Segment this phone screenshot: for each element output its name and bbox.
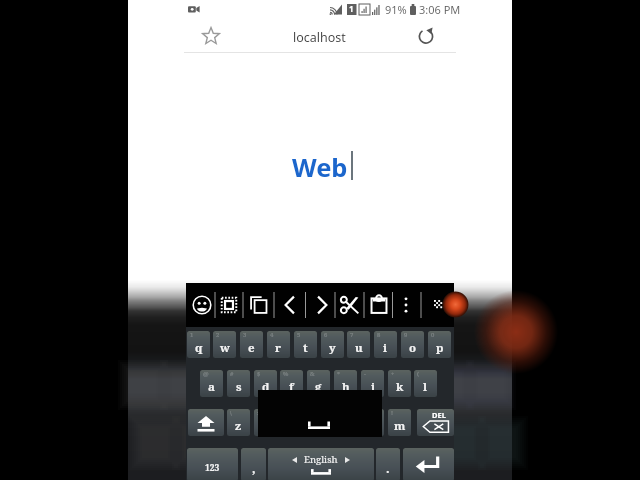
staticText: f	[289, 379, 294, 395]
staticText: &	[310, 370, 315, 378]
staticText: 6	[324, 331, 328, 339]
staticText: t	[303, 340, 308, 356]
button[interactable]: :	[254, 409, 277, 436]
staticText: 7	[350, 331, 354, 339]
button[interactable]: Bookmark	[201, 26, 221, 46]
staticText: w	[220, 340, 230, 356]
staticText: DEL	[432, 410, 446, 420]
button[interactable]: 123	[187, 448, 238, 480]
staticText: v	[315, 418, 322, 434]
button[interactable]: 6	[321, 331, 344, 358]
button[interactable]: Move left	[279, 294, 301, 316]
button[interactable]: &	[307, 370, 330, 397]
staticText: z	[235, 418, 242, 434]
button[interactable]: (	[414, 370, 437, 397]
button[interactable]: -	[361, 370, 384, 397]
button[interactable]: \	[227, 409, 250, 436]
staticText: q	[195, 340, 203, 356]
staticText: m	[394, 418, 406, 434]
staticText: 4	[270, 331, 274, 339]
button[interactable]: Paste	[368, 294, 390, 316]
button[interactable]: ?	[361, 409, 384, 436]
staticText: 1	[349, 3, 354, 14]
staticText: !	[391, 409, 393, 417]
staticText: (	[417, 370, 420, 378]
staticText: 91%	[385, 2, 407, 17]
button[interactable]: 2	[213, 331, 236, 358]
staticText: -	[364, 370, 366, 378]
button[interactable]: 3	[240, 331, 263, 358]
button[interactable]: $	[254, 370, 277, 397]
button[interactable]: !	[388, 409, 411, 436]
button[interactable]: %	[280, 370, 303, 397]
staticText: $	[257, 370, 261, 378]
button[interactable]: +	[388, 370, 411, 397]
button[interactable]: English	[268, 448, 374, 480]
staticText: 9	[404, 331, 408, 339]
staticText: d	[262, 379, 270, 395]
staticText: English	[304, 453, 338, 466]
button[interactable]: Cut	[339, 294, 361, 316]
staticText: a	[208, 379, 215, 395]
button[interactable]: 9	[401, 331, 424, 358]
button[interactable]: Copy	[248, 294, 270, 316]
staticText: 3	[243, 331, 247, 339]
button[interactable]: .	[376, 448, 400, 480]
button[interactable]: DEL	[417, 409, 454, 436]
button[interactable]: Refresh	[416, 26, 436, 46]
button[interactable]	[188, 409, 224, 436]
staticText: p	[436, 340, 444, 356]
button[interactable]: ,	[241, 448, 266, 480]
staticText: e	[248, 340, 255, 356]
staticText: l	[423, 379, 428, 395]
button[interactable]: 5	[294, 331, 317, 358]
staticText: 123	[205, 462, 220, 474]
button[interactable]: Select all	[218, 294, 240, 316]
button[interactable]: Move right	[311, 294, 333, 316]
button[interactable]: #	[227, 370, 250, 397]
button[interactable]: *	[334, 370, 357, 397]
button[interactable]: 0	[428, 331, 451, 358]
button[interactable]	[403, 448, 454, 480]
staticText: k	[396, 379, 404, 395]
staticText: u	[355, 340, 363, 356]
staticText: *	[337, 370, 341, 378]
staticText: \	[230, 409, 232, 417]
staticText: 5	[297, 331, 301, 339]
button[interactable]: "	[307, 409, 330, 436]
staticText: g	[315, 379, 322, 395]
button[interactable]: Emoji	[191, 294, 213, 316]
button[interactable]: More options	[395, 294, 417, 316]
staticText: ,	[252, 460, 256, 476]
staticText: localhost	[293, 29, 346, 46]
button[interactable]: @	[200, 370, 223, 397]
staticText: 8	[377, 331, 381, 339]
staticText: o	[409, 340, 417, 356]
staticText: 3:06 PM	[419, 2, 461, 17]
button[interactable]: 4	[267, 331, 290, 358]
staticText: i	[383, 340, 388, 356]
staticText: 2	[216, 331, 220, 339]
staticText: h	[342, 379, 350, 395]
staticText: @	[203, 370, 209, 378]
staticText: y	[329, 340, 336, 356]
staticText: :	[257, 409, 259, 417]
staticText: s	[236, 379, 242, 395]
staticText: Web	[292, 150, 348, 185]
staticText: %	[283, 370, 289, 378]
button[interactable]: 1	[187, 331, 210, 358]
button[interactable]: 8	[374, 331, 397, 358]
staticText: j	[371, 379, 375, 395]
button[interactable]: 7	[347, 331, 370, 358]
staticText: 1	[190, 331, 194, 339]
